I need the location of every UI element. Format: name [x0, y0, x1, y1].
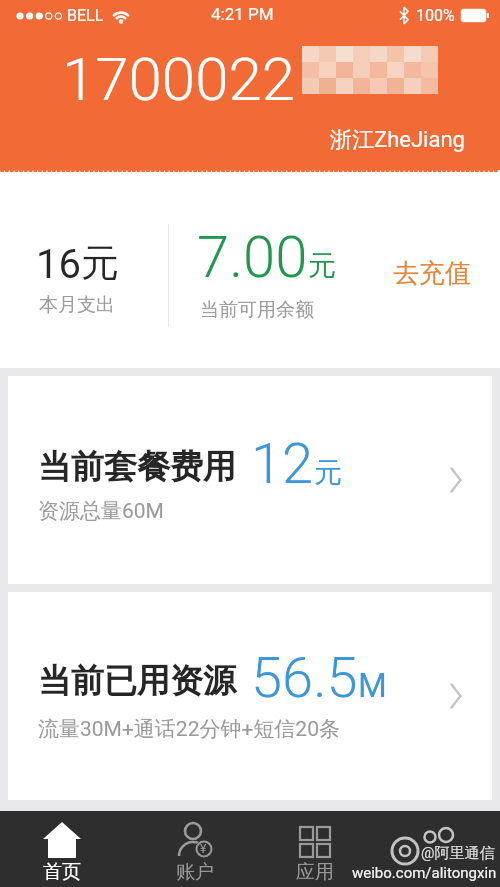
staticText: 去充值: [393, 257, 471, 290]
staticText: 首页: [43, 860, 81, 884]
staticText: 7.00: [197, 223, 308, 291]
staticText: 56.5: [251, 645, 358, 711]
staticText: 12: [251, 431, 314, 497]
staticText: 应用: [296, 860, 334, 884]
button[interactable]: 去充值: [381, 245, 483, 302]
button[interactable]: 当前套餐费用: [8, 376, 492, 584]
staticText: M: [358, 666, 387, 705]
staticText: 元: [308, 248, 336, 283]
staticText: 16: [36, 241, 81, 288]
staticText: 当前已用资源: [38, 660, 236, 702]
staticText: 1700022: [62, 44, 295, 114]
staticText: 当前套餐费用: [38, 446, 236, 488]
staticText: 流量30M+通话22分钟+短信20条: [38, 716, 340, 742]
staticText: 浙江ZheJiang: [330, 126, 465, 154]
button[interactable]: 首页: [34, 817, 90, 884]
staticText: 元: [314, 455, 342, 490]
staticText: BELL: [67, 6, 104, 25]
staticText: ¥: [200, 842, 207, 856]
staticText: 资源总量60M: [38, 498, 164, 524]
button[interactable]: ¥: [167, 817, 223, 884]
staticText: 账户: [176, 860, 214, 884]
staticText: 100%: [416, 6, 455, 25]
button[interactable]: 当前已用资源: [8, 592, 492, 800]
button[interactable]: 应用: [287, 817, 343, 884]
staticText: 元: [81, 239, 119, 287]
staticText: 4:21 PM: [211, 4, 274, 24]
staticText: 当前可用余额: [200, 298, 314, 322]
staticText: weibo.com/alitongxin: [352, 864, 497, 882]
staticText: 本月支出: [39, 293, 115, 317]
staticText: @阿里通信: [421, 844, 495, 863]
